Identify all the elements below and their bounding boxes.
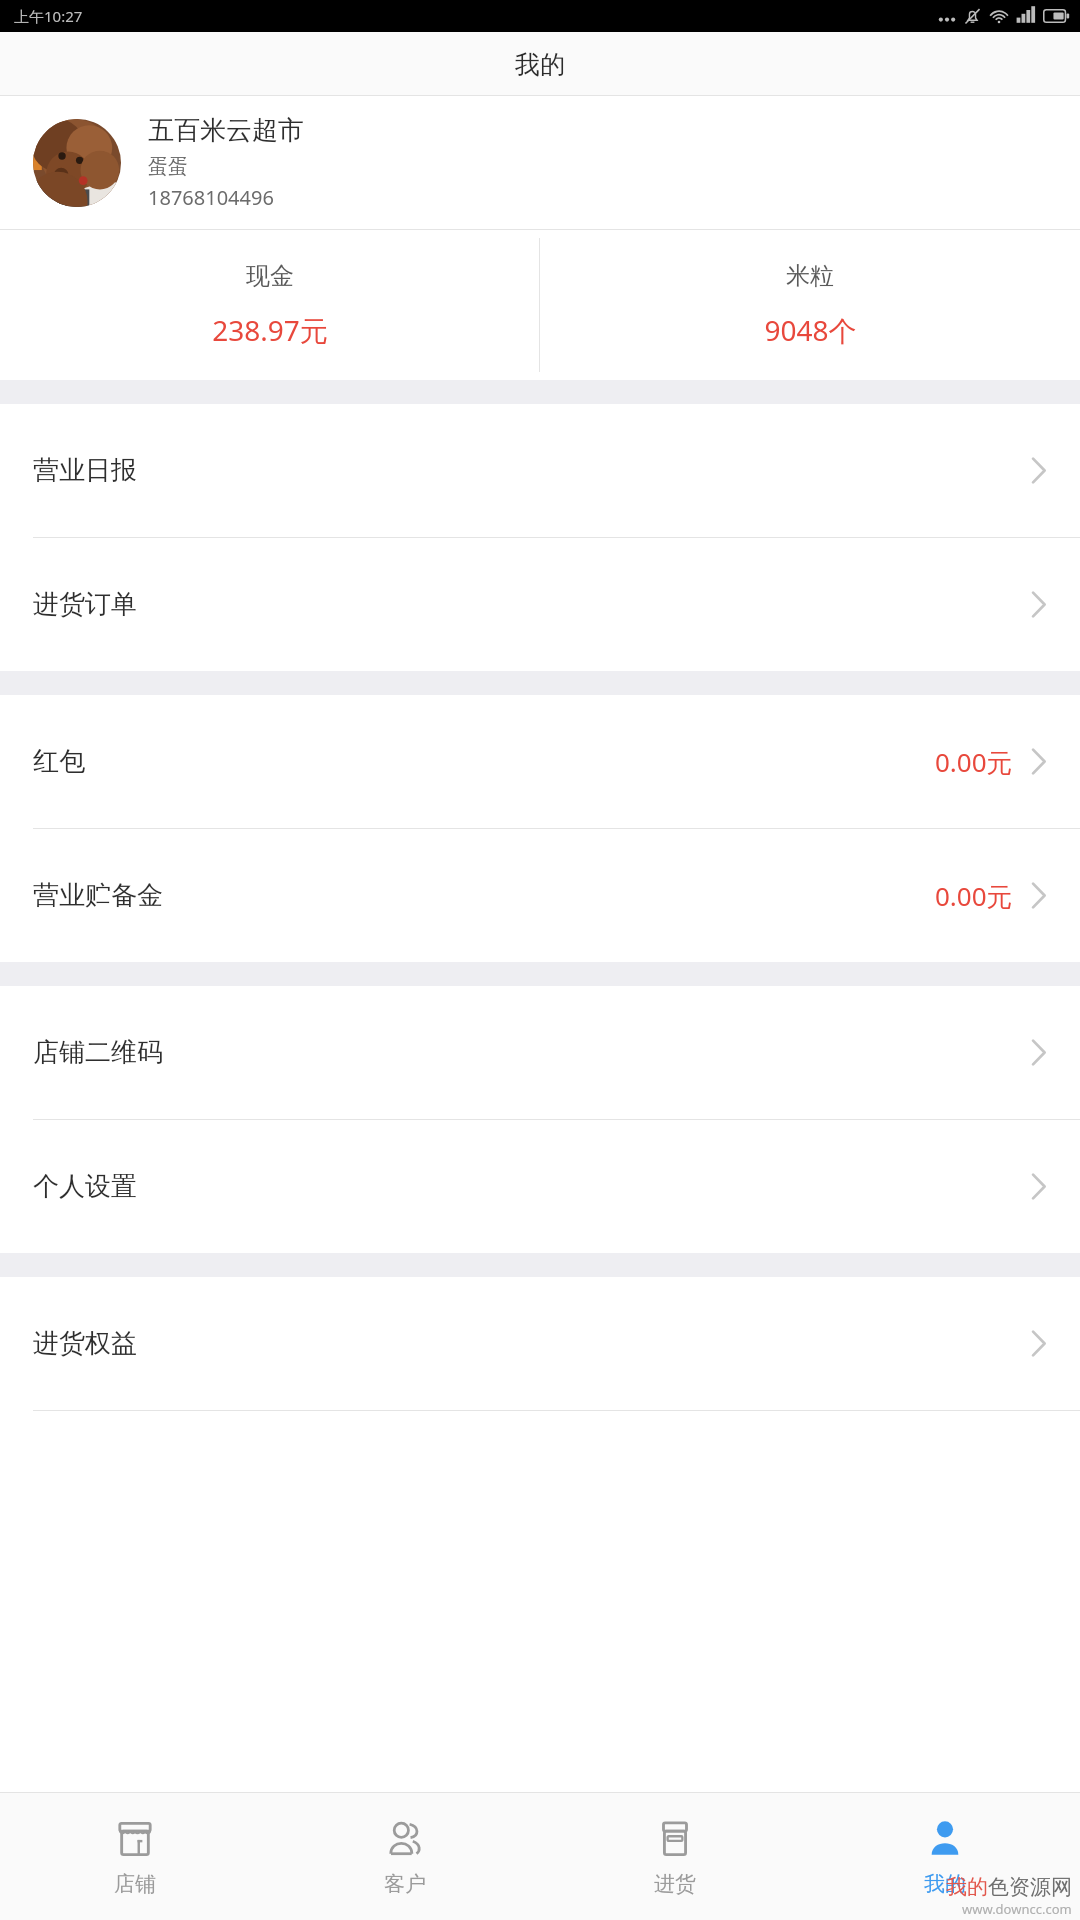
staticText: 0.00元 <box>935 878 1013 914</box>
staticText: 238.97元 <box>212 311 328 349</box>
staticText: 五百米云超市 <box>148 114 304 147</box>
button[interactable]: 米粒 <box>540 230 1080 380</box>
button[interactable]: 进货 <box>540 1792 810 1920</box>
button[interactable]: 个人设置 <box>0 1120 1080 1253</box>
staticText: 18768104496 <box>148 184 274 211</box>
button[interactable]: 店铺二维码 <box>0 986 1080 1119</box>
staticText: 店铺二维码 <box>33 1036 163 1069</box>
staticText: 0.00元 <box>935 744 1013 780</box>
staticText: www.downcc.com <box>962 1900 1072 1918</box>
staticText: 客户 <box>384 1871 426 1897</box>
staticText: 蛋蛋 <box>148 154 188 179</box>
staticText: 色资源网 <box>988 1874 1072 1900</box>
staticText: 个人设置 <box>33 1170 137 1203</box>
button[interactable]: 营业日报 <box>0 404 1080 537</box>
staticText: 营业日报 <box>33 454 137 487</box>
button[interactable]: 红包 <box>0 695 1080 828</box>
button[interactable]: 营业贮备金 <box>0 829 1080 962</box>
button[interactable]: 我的 <box>810 1792 1080 1920</box>
staticText: 我的 <box>515 49 565 80</box>
staticText: 我的 <box>924 1871 966 1897</box>
button[interactable]: 现金 <box>0 230 539 380</box>
button[interactable]: 进货权益 <box>0 1277 1080 1410</box>
staticText: 进货订单 <box>33 588 137 621</box>
button[interactable]: 店铺 <box>0 1792 270 1920</box>
button[interactable]: 客户 <box>270 1792 540 1920</box>
staticText: 营业贮备金 <box>33 879 163 912</box>
staticText: 进货权益 <box>33 1327 137 1360</box>
staticText: 米粒 <box>786 261 834 291</box>
button[interactable]: 进货订单 <box>0 538 1080 671</box>
staticText: 红包 <box>33 745 85 778</box>
staticText: 9048个 <box>764 311 857 349</box>
staticText: 上午10:27 <box>14 6 83 26</box>
staticText: 进货 <box>654 1871 696 1897</box>
staticText: 店铺 <box>114 1871 156 1897</box>
button[interactable]: 五百米云超市 <box>0 96 1080 229</box>
staticText: 我的 <box>946 1874 988 1900</box>
staticText: 现金 <box>246 261 294 291</box>
